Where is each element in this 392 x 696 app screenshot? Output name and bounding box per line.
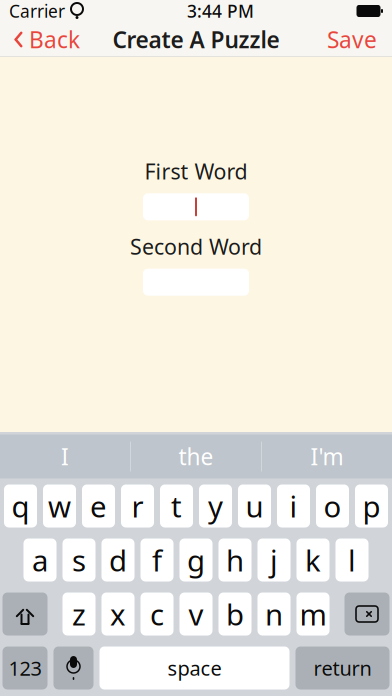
button[interactable]: y: [199, 484, 232, 527]
staticText: u: [245, 486, 263, 525]
staticText: i: [289, 486, 297, 525]
button[interactable]: a: [23, 538, 56, 581]
button[interactable]: space: [99, 646, 289, 689]
button[interactable]: o: [316, 484, 349, 527]
staticText: p: [362, 486, 380, 525]
staticText: r: [131, 486, 143, 525]
button[interactable]: d: [101, 538, 134, 581]
staticText: the: [178, 441, 213, 471]
staticText: I: [61, 441, 69, 471]
staticText: q: [11, 486, 29, 525]
staticText: s: [72, 540, 86, 579]
button[interactable]: i: [277, 484, 310, 527]
staticText: b: [226, 594, 244, 633]
staticText: m: [299, 594, 326, 633]
staticText: Carrier: [9, 0, 65, 22]
button[interactable]: Shift: [2, 592, 47, 635]
staticText: return: [313, 655, 371, 681]
staticText: Second Word: [130, 232, 262, 261]
button[interactable]: 123: [2, 646, 47, 689]
staticText: e: [90, 486, 107, 525]
button[interactable]: I'm: [262, 434, 392, 478]
staticText: f: [152, 540, 162, 579]
button[interactable]: q: [4, 484, 37, 527]
staticText: l: [348, 540, 356, 579]
button[interactable]: g: [179, 538, 212, 581]
button[interactable]: x: [101, 592, 134, 635]
staticText: h: [226, 540, 244, 579]
button[interactable]: v: [179, 592, 212, 635]
staticText: d: [109, 540, 127, 579]
button[interactable]: s: [62, 538, 95, 581]
staticText: x: [110, 594, 126, 633]
button[interactable]: p: [355, 484, 388, 527]
button[interactable]: h: [218, 538, 251, 581]
button[interactable]: l: [335, 538, 368, 581]
button[interactable]: w: [43, 484, 76, 527]
staticText: k: [305, 540, 321, 579]
staticText: Create A Puzzle: [112, 24, 279, 54]
staticText: o: [323, 486, 341, 525]
staticText: First Word: [144, 157, 247, 185]
staticText: Back: [29, 24, 80, 54]
button[interactable]: I: [0, 434, 130, 478]
staticText: space: [167, 655, 221, 681]
staticText: I'm: [310, 441, 343, 471]
staticText: z: [72, 594, 86, 633]
staticText: Save: [327, 24, 377, 54]
button[interactable]: Delete: [344, 592, 389, 635]
button[interactable]: j: [257, 538, 290, 581]
button[interactable]: u: [238, 484, 271, 527]
staticText: c: [150, 594, 164, 633]
button[interactable]: Save: [315, 22, 389, 56]
staticText: t: [171, 486, 182, 525]
button[interactable]: f: [140, 538, 173, 581]
staticText: g: [187, 540, 205, 579]
button[interactable]: t: [160, 484, 193, 527]
staticText: y: [208, 486, 223, 525]
staticText: 3:44 PM: [187, 0, 254, 22]
button[interactable]: n: [257, 592, 290, 635]
button[interactable]: m: [296, 592, 329, 635]
button[interactable]: Dictation: [53, 646, 93, 689]
staticText: 123: [8, 655, 41, 681]
button[interactable]: b: [218, 592, 251, 635]
staticText: j: [270, 540, 278, 579]
staticText: v: [188, 594, 203, 633]
button[interactable]: e: [82, 484, 115, 527]
staticText: w: [48, 486, 71, 525]
button[interactable]: Back: [3, 22, 90, 56]
button[interactable]: return: [295, 646, 389, 689]
staticText: a: [32, 540, 48, 579]
button[interactable]: the: [131, 434, 261, 478]
button[interactable]: r: [121, 484, 154, 527]
button[interactable]: c: [140, 592, 173, 635]
button[interactable]: z: [62, 592, 95, 635]
staticText: n: [265, 594, 283, 633]
button[interactable]: k: [296, 538, 329, 581]
